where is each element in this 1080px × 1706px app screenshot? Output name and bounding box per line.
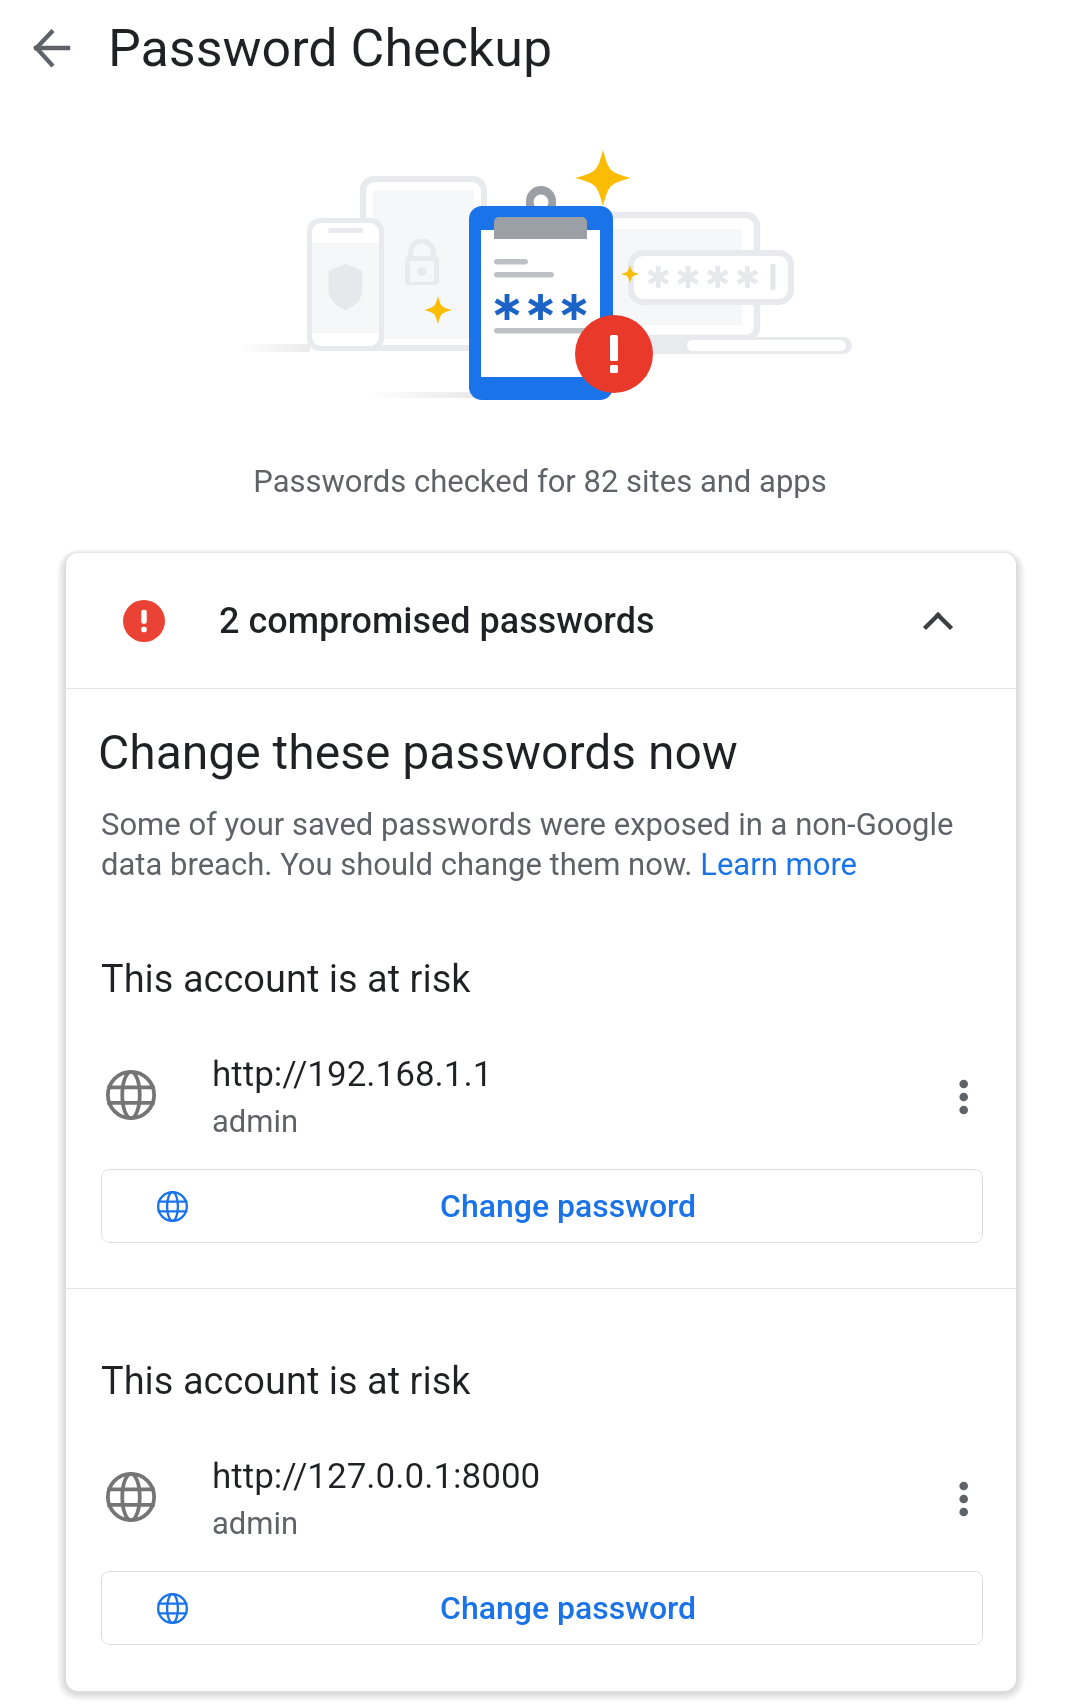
staticText: http://127.0.0.1:8000 (212, 1456, 541, 1497)
staticText: 2 compromised passwords (219, 600, 655, 642)
staticText: Change password (440, 1589, 697, 1627)
button[interactable]: More options (916, 1452, 1010, 1546)
button[interactable]: http://127.0.0.1:8000 (66, 1434, 1016, 1538)
staticText: Passwords checked for 82 sites and apps (0, 463, 1080, 499)
staticText: Change these passwords now (98, 724, 738, 780)
button[interactable]: Change password (101, 1169, 983, 1243)
staticText: This account is at risk (101, 957, 471, 1002)
staticText: Password Checkup (108, 18, 553, 79)
button[interactable]: More options (916, 1050, 1010, 1144)
staticText: admin (212, 1505, 299, 1541)
button[interactable]: 2 compromised passwords (66, 553, 1016, 688)
button[interactable]: Change password (101, 1571, 983, 1645)
button[interactable]: http://192.168.1.1 (66, 1032, 1016, 1136)
staticText: admin (212, 1103, 299, 1139)
staticText: Some of your saved passwords were expose… (101, 806, 971, 883)
button[interactable]: Collapse (890, 573, 986, 669)
staticText: This account is at risk (101, 1359, 471, 1404)
staticText: Change password (440, 1187, 697, 1225)
button[interactable]: Back (3, 0, 99, 96)
staticText: http://192.168.1.1 (212, 1054, 493, 1095)
